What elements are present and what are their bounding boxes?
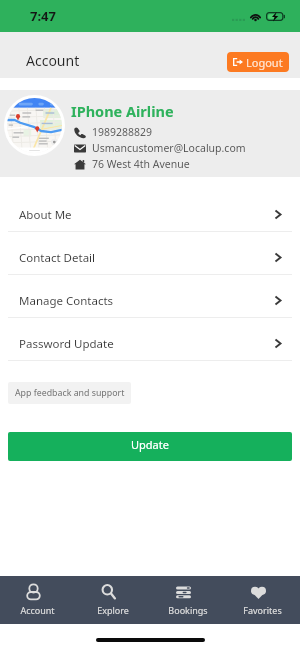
staticText: About Me bbox=[19, 207, 72, 223]
button[interactable]: Account bbox=[0, 576, 75, 624]
button[interactable]: App feedback and support bbox=[8, 382, 131, 404]
staticText: 7:47 bbox=[30, 7, 56, 25]
button[interactable]: Explore bbox=[75, 576, 150, 624]
button[interactable]: Manage Contacts bbox=[0, 275, 300, 318]
staticText: Password Update bbox=[19, 336, 114, 352]
other: Account bbox=[26, 584, 41, 600]
button[interactable]: Logout bbox=[227, 52, 289, 72]
other: Favorites bbox=[251, 584, 266, 600]
button[interactable]: Favorites bbox=[225, 576, 300, 624]
staticText: IPhone Airline bbox=[71, 101, 174, 121]
other: Explore bbox=[101, 584, 116, 600]
staticText: Contact Detail bbox=[19, 250, 96, 266]
staticText: Account bbox=[20, 604, 55, 616]
staticText: 76 West 4th Avenue bbox=[92, 157, 190, 171]
button[interactable]: Password Update bbox=[0, 318, 300, 361]
button[interactable]: Bookings bbox=[150, 576, 225, 624]
staticText: Update bbox=[131, 437, 169, 452]
staticText: Account bbox=[26, 51, 80, 70]
button[interactable]: Update bbox=[8, 432, 292, 461]
staticText: Bookings bbox=[168, 604, 208, 616]
button[interactable]: Contact Detail bbox=[0, 232, 300, 275]
staticText: Manage Contacts bbox=[19, 293, 114, 309]
button[interactable]: About Me bbox=[0, 189, 300, 232]
staticText: Logout bbox=[246, 55, 283, 70]
other: Bookings bbox=[176, 584, 191, 600]
staticText: Favorites bbox=[243, 604, 282, 616]
staticText: 1989288829 bbox=[92, 125, 153, 139]
staticText: Usmancustomer@Localup.com bbox=[92, 141, 246, 155]
staticText: Explore bbox=[97, 604, 129, 616]
other: Logout bbox=[233, 58, 243, 66]
staticText: App feedback and support bbox=[15, 387, 125, 399]
